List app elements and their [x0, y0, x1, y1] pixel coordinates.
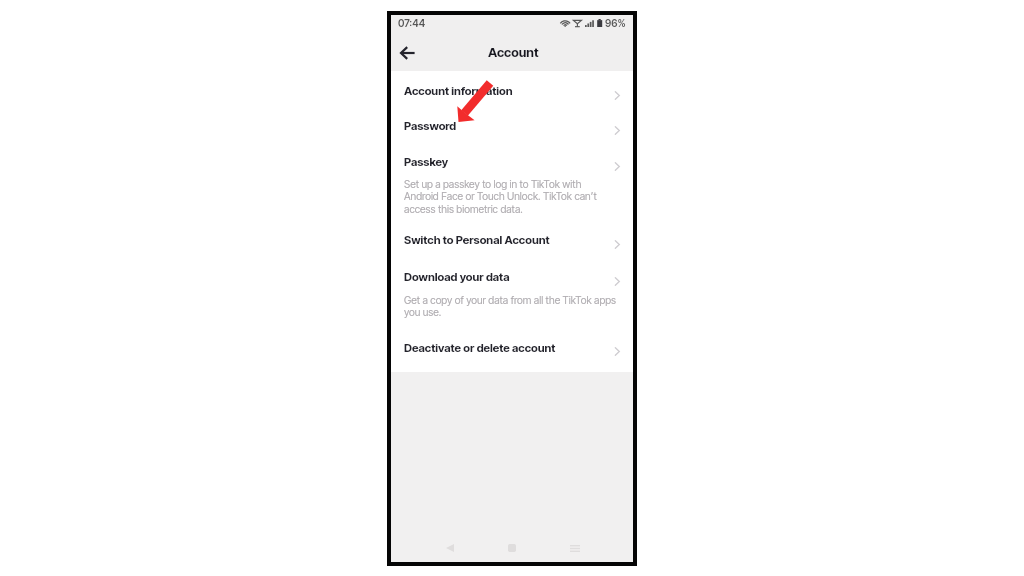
button[interactable]: Account information: [391, 71, 633, 105]
staticText: Download your data: [404, 270, 510, 284]
staticText: Get a copy of your data from all the Tik…: [404, 294, 617, 307]
button[interactable]: Passkey: [391, 141, 633, 221]
staticText: you use.: [404, 306, 442, 319]
staticText: Set up a passkey to log in to TikTok wit…: [404, 178, 582, 191]
staticText: Passkey: [404, 155, 449, 169]
staticText: Switch to Personal Account: [404, 233, 550, 247]
staticText: access this biometric data.: [404, 203, 523, 216]
button[interactable]: Home: [493, 529, 531, 567]
button[interactable]: Password: [391, 105, 633, 141]
button[interactable]: Back: [431, 529, 469, 567]
staticText: 07:44: [398, 17, 426, 29]
staticText: Password: [404, 119, 457, 133]
button[interactable]: Recent apps: [556, 529, 594, 567]
staticText: Android Face or Touch Unlock. TikTok can…: [404, 190, 597, 203]
staticText: 96%: [605, 17, 626, 29]
staticText: Account: [488, 45, 539, 61]
button[interactable]: Deactivate or delete account: [391, 323, 633, 372]
button[interactable]: Download your data: [391, 257, 633, 323]
staticText: Deactivate or delete account: [404, 341, 556, 355]
button[interactable]: Switch to Personal Account: [391, 221, 633, 257]
button[interactable]: Back: [395, 41, 419, 65]
staticText: Account information: [404, 84, 513, 98]
